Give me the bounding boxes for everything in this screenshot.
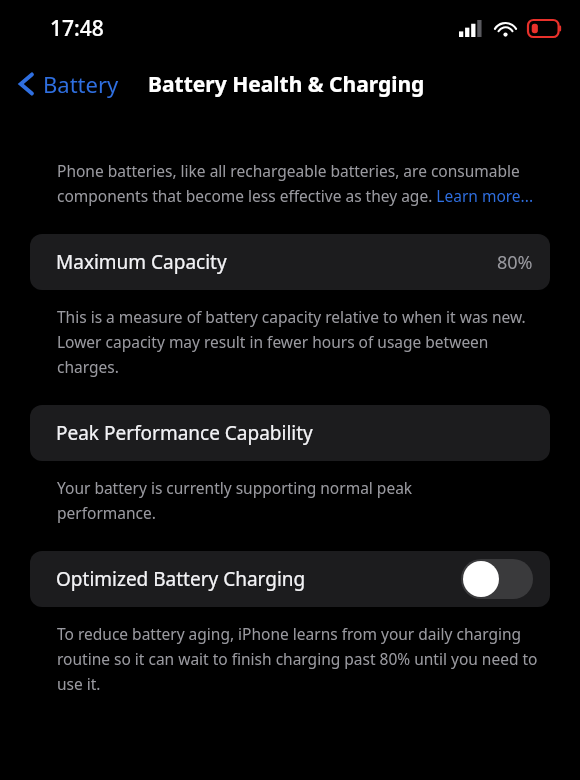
staticText: Maximum Capacity [56,249,227,275]
button[interactable]: Battery [12,65,125,103]
button[interactable]: Peak Performance Capability [30,405,550,461]
staticText: 17:48 [50,14,104,43]
button[interactable]: Optimized Battery Charging toggle [461,559,533,599]
staticText: To reduce battery aging, iPhone learns f… [57,623,546,694]
staticText: Optimized Battery Charging [56,566,306,592]
staticText: 80% [497,250,533,275]
staticText: Your battery is currently supporting nor… [57,477,510,523]
staticText: Peak Performance Capability [56,420,313,446]
staticText: Battery Health & Charging [148,70,425,99]
staticText: This is a measure of battery capacity re… [57,306,546,377]
button[interactable]: Maximum Capacity [30,234,550,290]
button[interactable]: Optimized Battery Charging [30,551,550,607]
staticText: Battery [43,69,119,99]
button[interactable]: Phone batteries, like all rechargeable b… [57,160,540,206]
